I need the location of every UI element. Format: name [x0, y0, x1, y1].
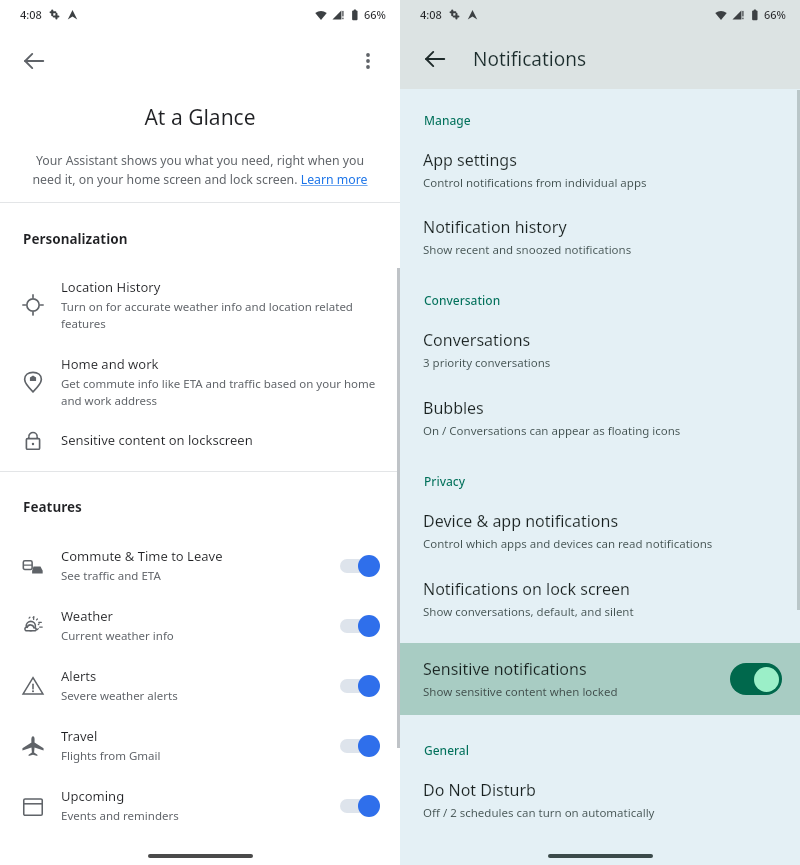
button[interactable]: Sensitive notifications [400, 643, 800, 715]
staticText: Privacy [424, 473, 466, 489]
staticText: Upcoming [61, 787, 125, 805]
staticText: Get commute info like ETA and traffic ba… [61, 376, 380, 408]
staticText: Show conversations, default, and silent [423, 604, 634, 620]
staticText: Travel [61, 727, 98, 745]
button[interactable]: Sensitive notifications toggle [730, 663, 782, 695]
button[interactable]: App settings [400, 149, 800, 191]
staticText: Notification history [423, 216, 567, 238]
button[interactable]: Bubbles [400, 397, 800, 439]
button[interactable]: Toggle [338, 613, 382, 639]
staticText: Bubbles [423, 397, 484, 419]
button[interactable]: Device & app notifications [400, 510, 800, 552]
staticText: On / Conversations can appear as floatin… [423, 423, 681, 439]
staticText: 4:08 [20, 7, 42, 22]
staticText: Notifications on lock screen [423, 578, 630, 600]
staticText: Conversation [424, 292, 501, 308]
staticText: Control notifications from individual ap… [423, 175, 647, 191]
staticText: Personalization [23, 230, 128, 248]
staticText: Location History [61, 278, 161, 296]
staticText: Features [23, 498, 82, 516]
staticText: App settings [423, 149, 517, 171]
staticText: Turn on for accurate weather info and lo… [61, 299, 380, 331]
staticText: Events and reminders [61, 808, 179, 824]
button[interactable]: Sensitive content on lockscreen [0, 429, 400, 451]
button[interactable]: Notification history [400, 216, 800, 258]
staticText: Home and work [61, 355, 159, 373]
staticText: Sensitive notifications [423, 658, 587, 680]
button[interactable]: Notifications on lock screen [400, 578, 800, 620]
button[interactable]: Do Not Disturb [400, 779, 800, 821]
staticText: Device & app notifications [423, 510, 619, 532]
staticText: Show recent and snoozed notifications [423, 242, 632, 258]
staticText: Your Assistant shows you what you need, … [22, 152, 378, 188]
button[interactable]: Toggle [338, 673, 382, 699]
button[interactable]: Back [12, 39, 56, 83]
staticText: General [424, 742, 469, 758]
button[interactable]: Travel [0, 727, 400, 764]
staticText: Manage [424, 112, 471, 128]
staticText: 66% [764, 7, 786, 22]
button[interactable]: Upcoming [0, 787, 400, 824]
button[interactable]: Home and work [0, 355, 400, 408]
staticText: Notifications [473, 46, 587, 72]
staticText: Flights from Gmail [61, 748, 161, 764]
button[interactable]: More options [346, 39, 390, 83]
staticText: Commute & Time to Leave [61, 547, 223, 565]
staticText: Off / 2 schedules can turn on automatica… [423, 805, 655, 821]
staticText: Weather [61, 607, 113, 625]
button[interactable]: Back [414, 38, 456, 80]
staticText: Severe weather alerts [61, 688, 178, 704]
staticText: See traffic and ETA [61, 568, 161, 584]
button[interactable]: Alerts [0, 667, 400, 704]
button[interactable]: Toggle [338, 733, 382, 759]
button[interactable]: Toggle [338, 793, 382, 819]
staticText: Alerts [61, 667, 97, 685]
staticText: 4:08 [420, 7, 442, 22]
staticText: Conversations [423, 329, 531, 351]
staticText: Do Not Disturb [423, 779, 536, 801]
staticText: Show sensitive content when locked [423, 684, 618, 700]
button[interactable]: Location History [0, 278, 400, 331]
staticText: 66% [364, 7, 386, 22]
button[interactable]: Weather [0, 607, 400, 644]
button[interactable]: Conversations [400, 329, 800, 371]
staticText: Control which apps and devices can read … [423, 536, 713, 552]
button[interactable]: Commute & Time to Leave [0, 547, 400, 584]
button[interactable]: Toggle [338, 553, 382, 579]
staticText: At a Glance [24, 103, 376, 132]
staticText: Sensitive content on lockscreen [61, 431, 253, 449]
staticText: 3 priority conversations [423, 355, 551, 371]
staticText: Current weather info [61, 628, 174, 644]
